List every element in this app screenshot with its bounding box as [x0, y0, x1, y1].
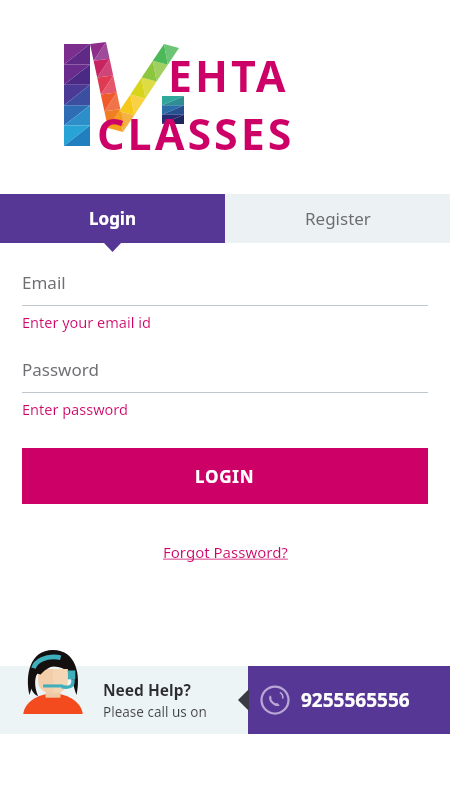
staticText: Login	[89, 207, 137, 230]
staticText: CLASSES	[97, 104, 295, 163]
button[interactable]: 9255565556	[248, 666, 450, 734]
staticText: Email	[22, 271, 66, 294]
staticText: LOGIN	[195, 465, 255, 488]
button[interactable]: Register	[225, 194, 450, 243]
staticText: Enter your email id	[22, 312, 151, 332]
button[interactable]: Email	[0, 271, 450, 332]
staticText: Need Help?	[103, 679, 191, 700]
staticText: Please call us on	[103, 703, 207, 721]
button[interactable]: Forgot Password?	[157, 536, 294, 568]
staticText: 9255565556	[301, 687, 410, 713]
staticText: Forgot Password?	[163, 542, 288, 562]
other: Support agent	[22, 646, 84, 714]
button[interactable]: LOGIN	[22, 448, 428, 504]
staticText: Enter password	[22, 399, 128, 419]
button[interactable]: Password	[0, 358, 450, 419]
staticText: Register	[305, 207, 371, 230]
button[interactable]: Login	[0, 194, 225, 243]
button[interactable]: Need Help?	[103, 679, 207, 721]
staticText: Password	[22, 358, 99, 381]
staticText: EHTA	[168, 46, 289, 105]
